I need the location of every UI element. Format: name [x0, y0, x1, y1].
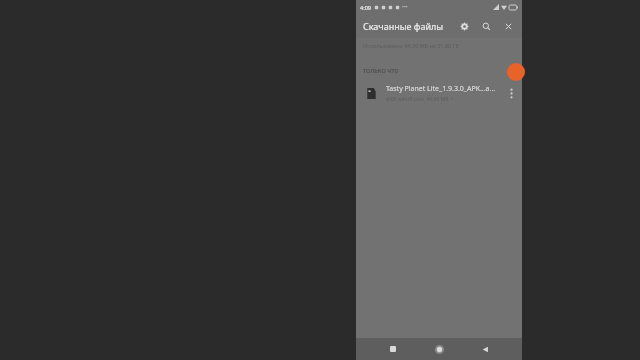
staticText: d-06.winuff.com 46,45 MB •	[386, 96, 453, 103]
button[interactable]: Back	[476, 340, 494, 358]
button[interactable]: Tasty Planet Lite_1.9.3.0_APK...a...	[356, 80, 522, 106]
button[interactable]: Add	[507, 63, 525, 81]
staticText: 4:09	[360, 4, 371, 11]
staticText: Использовано: 44,30 МБ из 51,80 ГБ	[363, 42, 459, 49]
button[interactable]: Close	[500, 18, 516, 34]
button[interactable]: Recents	[384, 340, 402, 358]
staticText: Tasty Planet Lite_1.9.3.0_APK...a...	[386, 84, 496, 94]
button[interactable]: Settings	[456, 18, 472, 34]
button[interactable]: More options	[504, 82, 518, 104]
button[interactable]: Home	[430, 340, 448, 358]
staticText: Скачанные файлы	[363, 20, 444, 32]
button[interactable]: Search	[478, 18, 494, 34]
staticText: •••	[402, 4, 408, 11]
staticText: ТОЛЬКО ЧТО	[363, 67, 399, 74]
